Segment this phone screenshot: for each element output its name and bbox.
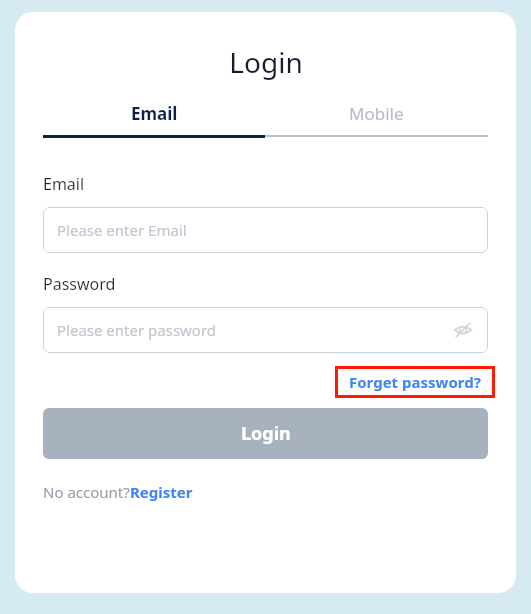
staticText: Login — [241, 421, 291, 446]
button[interactable]: Please enter password — [43, 307, 488, 353]
button[interactable]: Show password — [448, 315, 478, 345]
staticText: Please enter Email — [57, 220, 187, 240]
button[interactable]: Please enter Email — [43, 207, 488, 253]
staticText: Forget password? — [349, 372, 481, 392]
staticText: Register — [130, 482, 193, 502]
staticText: Password — [43, 273, 116, 295]
staticText: Email — [43, 173, 85, 195]
staticText: No account? — [43, 482, 130, 502]
button[interactable]: Mobile — [265, 102, 488, 137]
button[interactable]: Register — [130, 482, 193, 502]
button[interactable]: Forget password? — [335, 366, 495, 398]
button[interactable]: Email — [43, 102, 265, 138]
staticText: Mobile — [349, 102, 404, 125]
staticText: Login — [229, 43, 303, 81]
button[interactable]: Login — [43, 408, 488, 459]
staticText: Email — [131, 102, 178, 125]
staticText: Please enter password — [57, 320, 217, 340]
